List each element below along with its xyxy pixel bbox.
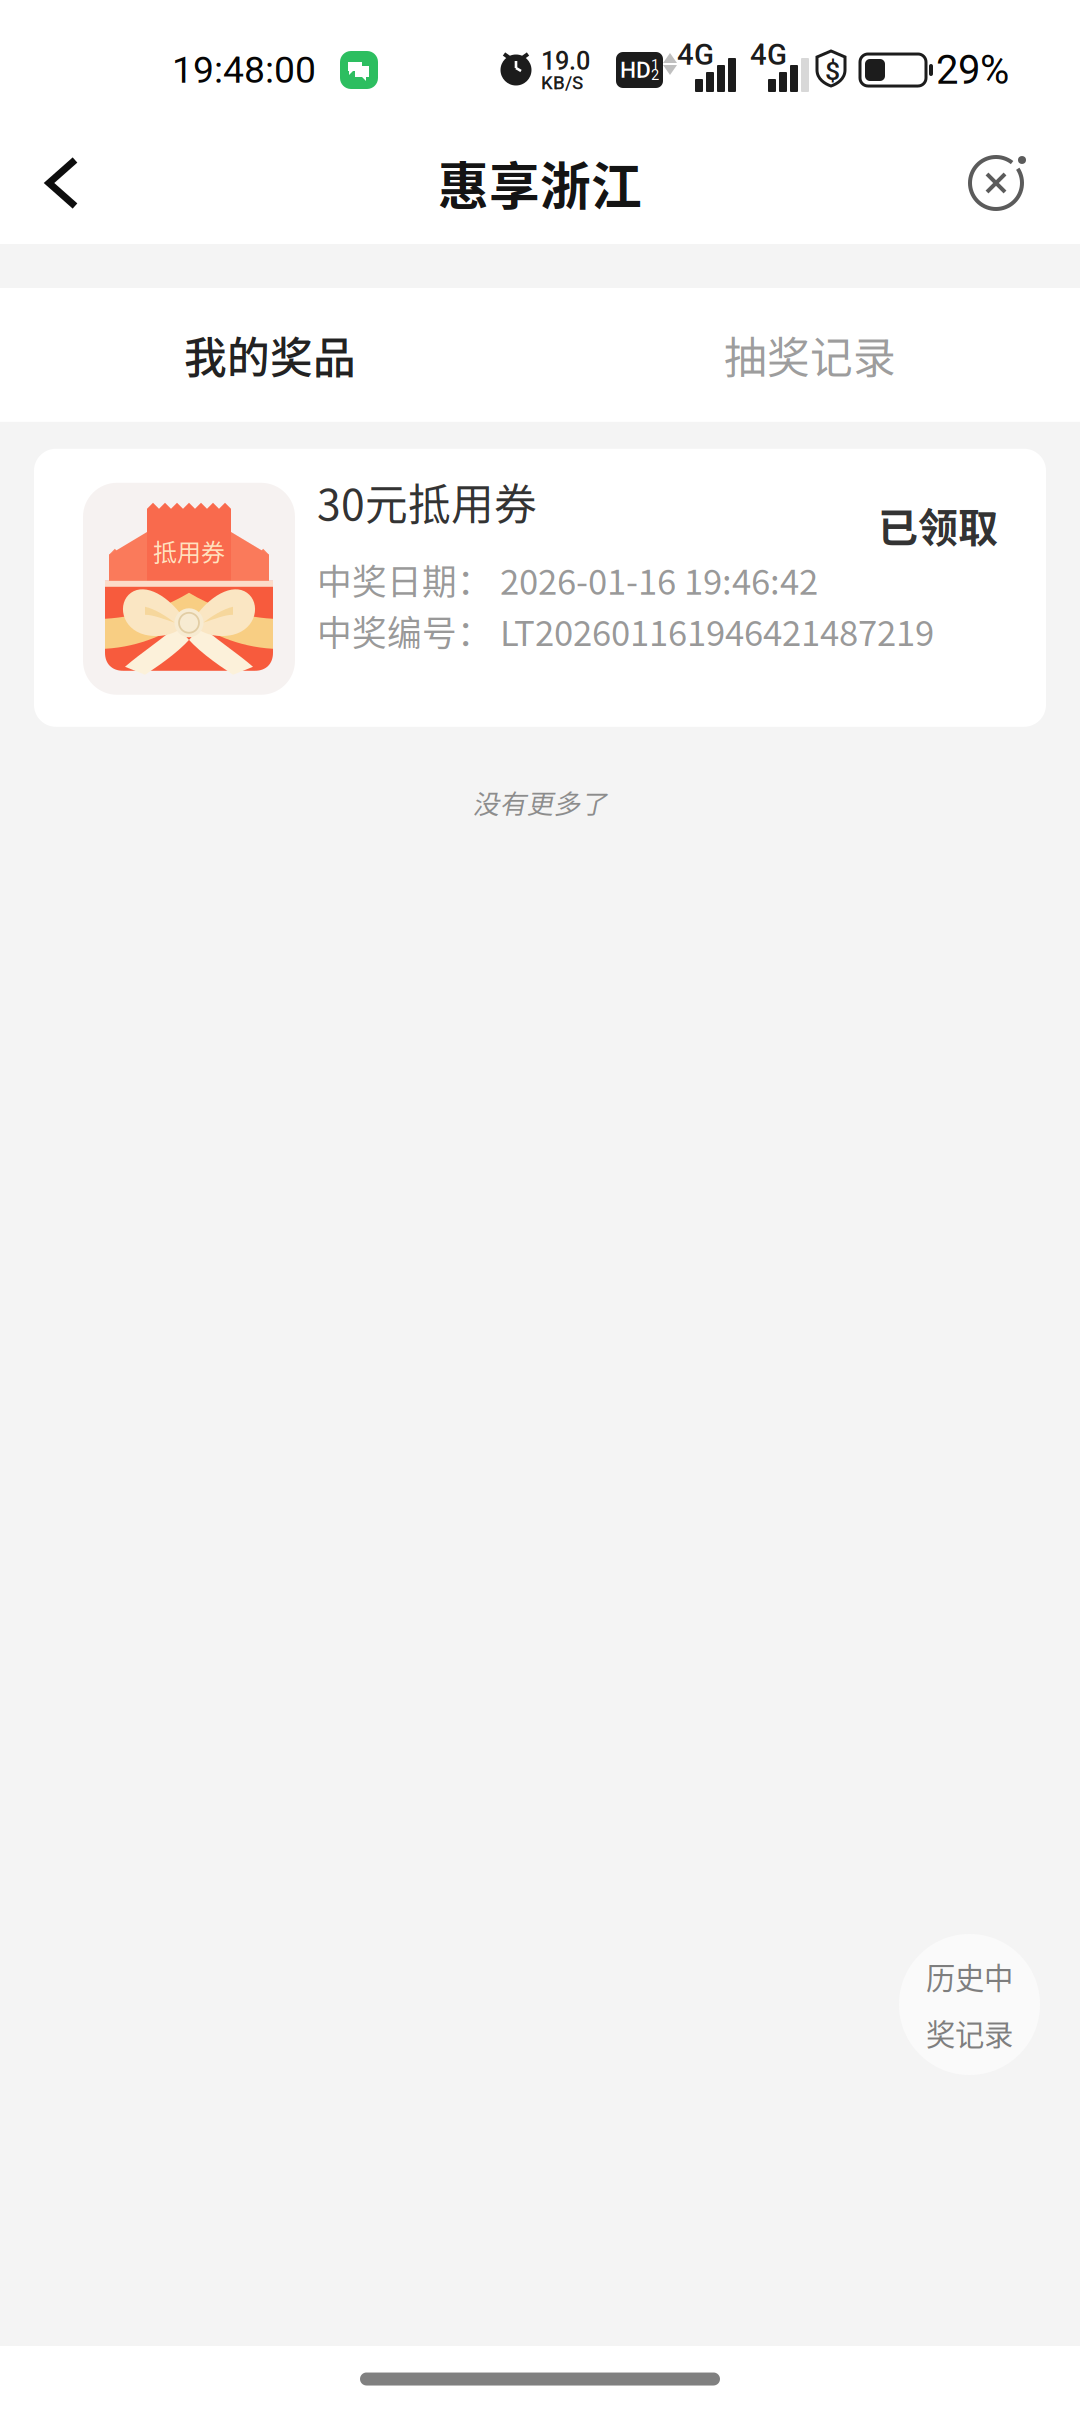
staticText: 没有更多了 bbox=[472, 783, 607, 821]
staticText: 已领取 bbox=[878, 496, 998, 554]
staticText: 我的奖品 bbox=[184, 324, 356, 386]
staticText: KB/S bbox=[541, 72, 583, 94]
staticText: 中奖日期： 2026-01-16 19:46:42 bbox=[317, 555, 818, 605]
staticText: 奖记录 bbox=[926, 2011, 1013, 2054]
button[interactable]: 抽奖记录 bbox=[540, 288, 1080, 422]
button[interactable]: 我的奖品 bbox=[0, 288, 540, 422]
staticText: 1 bbox=[651, 56, 659, 73]
staticText: 4G bbox=[750, 38, 787, 72]
staticText: 19:48:00 bbox=[172, 48, 316, 92]
staticText: 30元抵用券 bbox=[317, 471, 537, 533]
button[interactable]: 关闭 bbox=[931, 124, 1080, 242]
staticText: 抵用券 bbox=[153, 533, 225, 568]
staticText: 中奖编号： LT202601161946421487219 bbox=[317, 606, 934, 656]
staticText: 4G bbox=[677, 38, 714, 72]
staticText: 历史中 bbox=[926, 1955, 1013, 1997]
button[interactable]: 历史中 bbox=[899, 1934, 1040, 2075]
button[interactable]: 返回 bbox=[0, 126, 112, 240]
staticText: 抽奖记录 bbox=[724, 324, 896, 386]
button[interactable]: 已领取 bbox=[34, 449, 1046, 727]
staticText: HD bbox=[620, 57, 651, 83]
staticText: $ bbox=[825, 55, 840, 87]
staticText: 惠享浙江 bbox=[438, 146, 642, 220]
staticText: 29% bbox=[936, 47, 1009, 93]
staticText: 2 bbox=[651, 66, 659, 84]
staticText: 19.0 bbox=[541, 46, 590, 76]
